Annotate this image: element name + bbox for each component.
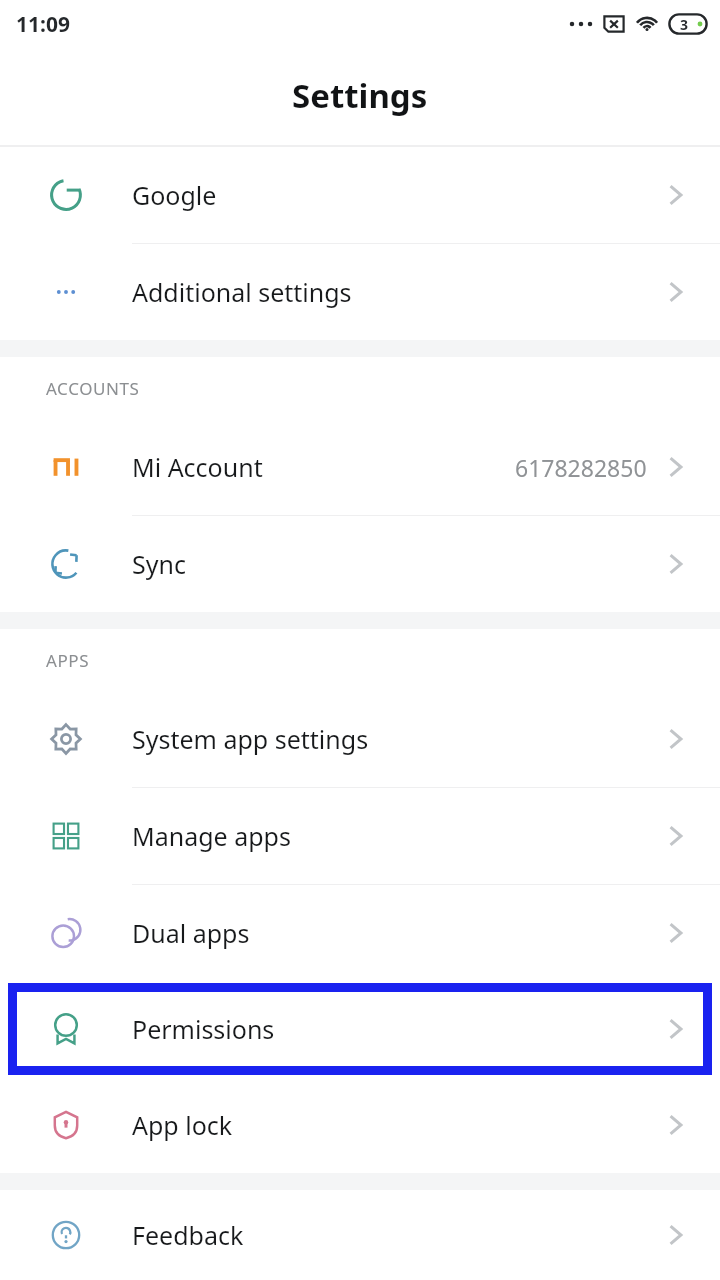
button[interactable]: Permissions [0,981,720,1077]
staticText: Settings [292,73,428,118]
staticText: APPS [46,649,90,672]
button[interactable]: System app settings [0,691,720,787]
staticText: System app settings [132,722,369,756]
button[interactable]: Sync [0,516,720,612]
staticText: Dual apps [132,916,250,950]
staticText: Permissions [132,1012,275,1046]
button[interactable]: Feedback [0,1190,720,1280]
staticText: Feedback [132,1218,244,1252]
button[interactable]: Google [0,147,720,243]
button[interactable]: App lock [0,1077,720,1173]
other: Google [46,175,86,215]
staticText: Additional settings [132,275,352,309]
staticText: Manage apps [132,819,291,853]
staticText: App lock [132,1108,233,1142]
staticText: Sync [132,547,186,581]
button[interactable]: Additional settings [0,244,720,340]
button[interactable]: Dual apps [0,885,720,981]
button[interactable]: Manage apps [0,788,720,884]
staticText: Google [132,178,217,212]
staticText: Mi Account [132,450,263,484]
staticText: 3 [680,15,689,34]
staticText: 6178282850 [515,452,647,483]
staticText: 11:09 [16,10,70,39]
button[interactable]: Mi Account [0,419,720,515]
staticText: ACCOUNTS [46,377,140,400]
